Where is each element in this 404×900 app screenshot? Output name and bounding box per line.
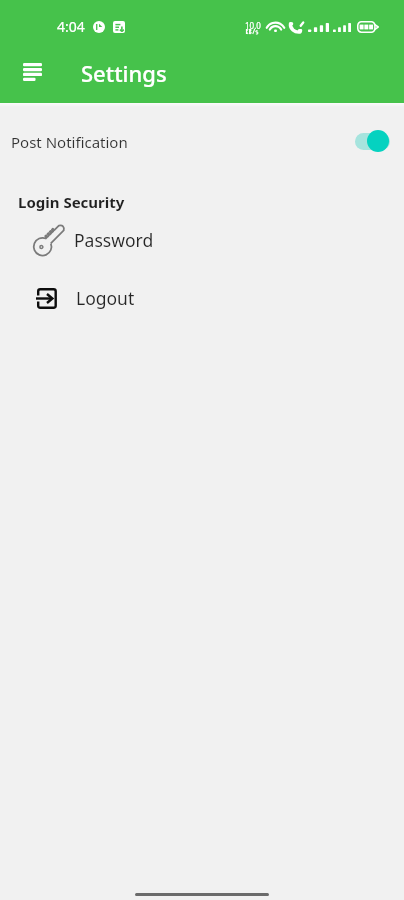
staticText: Password [74, 228, 154, 252]
staticText: 10.0 [245, 20, 261, 31]
staticText: Login Security [18, 192, 125, 212]
staticText: Logout [76, 286, 135, 310]
button[interactable]: Logout [0, 279, 404, 317]
staticText: Settings [81, 58, 167, 88]
button[interactable]: Open navigation menu [15, 56, 50, 88]
staticText: 4:04 [57, 17, 85, 36]
staticText: Post Notification [11, 132, 128, 152]
button[interactable]: Post Notification [0, 118, 404, 166]
button[interactable]: Password [0, 219, 404, 257]
